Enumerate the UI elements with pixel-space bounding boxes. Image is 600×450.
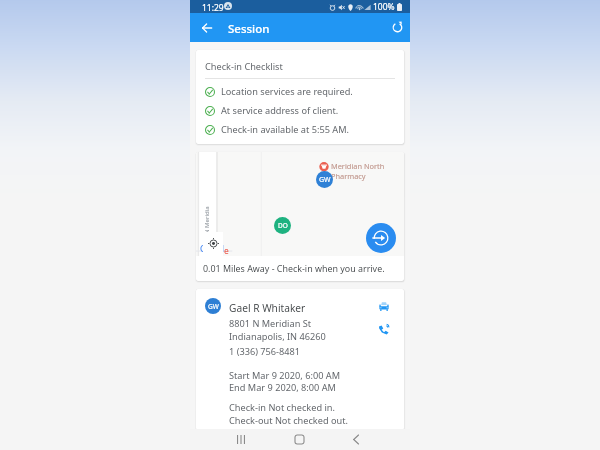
button[interactable]: Destination marker: [274, 217, 291, 234]
staticText: At service address of client.: [221, 104, 339, 117]
staticText: Session: [228, 21, 270, 37]
button[interactable]: Back: [338, 429, 374, 450]
staticText: Indianapolis, IN 46260: [229, 330, 326, 343]
staticText: GW: [319, 175, 331, 185]
button[interactable]: Recents: [223, 429, 259, 450]
staticText: Location services are required.: [221, 85, 353, 98]
button[interactable]: Location services are required.: [205, 84, 353, 99]
button[interactable]: Check-in available at 5:55 AM.: [205, 122, 349, 137]
button[interactable]: Back: [195, 13, 219, 42]
button[interactable]: Check in: [366, 223, 396, 253]
staticText: GW: [208, 302, 219, 311]
button[interactable]: At service address of client.: [205, 103, 339, 118]
button[interactable]: Home: [281, 429, 317, 450]
staticText: Check-in Checklist: [205, 60, 283, 73]
staticText: 11:29: [202, 2, 224, 14]
button[interactable]: Client marker: [316, 171, 333, 188]
staticText: 0.01 Miles Away - Check-in when you arri…: [203, 262, 385, 274]
staticText: 100%: [373, 1, 395, 13]
staticText: Check-in available at 5:55 AM.: [221, 123, 349, 136]
button[interactable]: Call: [372, 317, 396, 341]
staticText: Check-in Not checked in.: [229, 401, 335, 414]
staticText: e: [224, 245, 229, 257]
staticText: Googl: [200, 243, 224, 255]
button[interactable]: Refresh: [384, 13, 410, 42]
staticText: End Mar 9 2020, 8:00 AM: [229, 381, 336, 394]
staticText: Pharmacy: [331, 171, 366, 181]
staticText: Meridian North: [331, 161, 385, 171]
button[interactable]: Directions: [372, 294, 396, 318]
staticText: 1 (336) 756-8481: [229, 345, 301, 358]
staticText: Gael R Whitaker: [229, 301, 306, 315]
staticText: Start Mar 9 2020, 6:00 AM: [229, 369, 341, 382]
button[interactable]: My location: [203, 232, 223, 256]
staticText: Check-out Not checked out.: [229, 414, 348, 427]
staticText: N Meridia: [203, 202, 211, 234]
staticText: DO: [278, 221, 288, 230]
staticText: 8801 N Meridian St: [229, 317, 312, 330]
